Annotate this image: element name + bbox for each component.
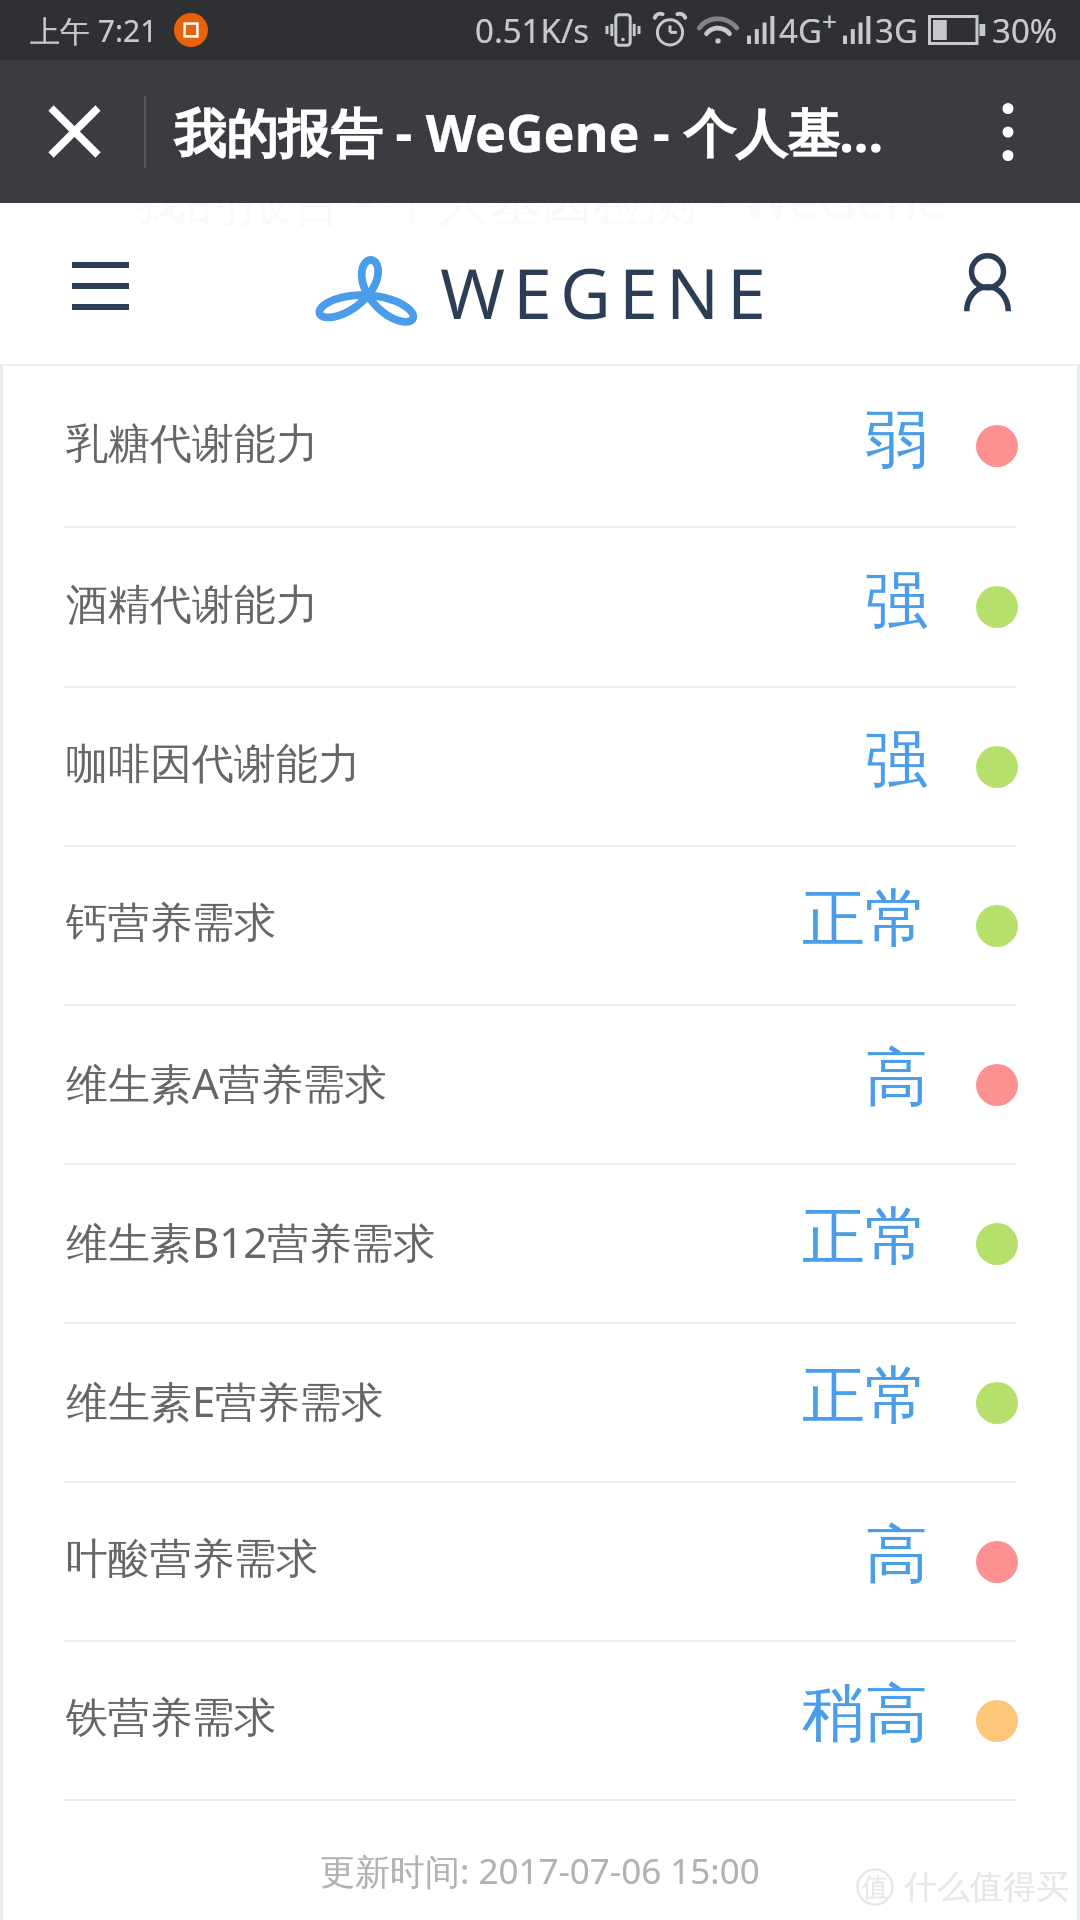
- button[interactable]: 酒精代谢能力: [3, 528, 1077, 686]
- staticText: 酒精代谢能力: [66, 579, 318, 632]
- staticText: 正常: [802, 1356, 928, 1435]
- staticText: 铁营养需求: [66, 1692, 276, 1745]
- staticText: 强: [865, 561, 928, 640]
- staticText: 咖啡因代谢能力: [66, 738, 360, 791]
- staticText: 30%: [992, 8, 1058, 53]
- staticText: 3G: [875, 8, 918, 53]
- staticText: 4G: [779, 8, 822, 53]
- staticText: 钙营养需求: [66, 897, 276, 950]
- button[interactable]: 咖啡因代谢能力: [3, 688, 1077, 845]
- staticText: 高: [865, 1515, 928, 1594]
- staticText: 0.51K/s: [475, 8, 589, 53]
- staticText: 乳糖代谢能力: [66, 418, 318, 471]
- button[interactable]: 钙营养需求: [3, 847, 1077, 1004]
- button[interactable]: Account: [952, 246, 1028, 322]
- staticText: 正常: [802, 1197, 928, 1276]
- staticText: 什么值得买: [904, 1866, 1069, 1908]
- staticText: 强: [865, 720, 928, 799]
- staticText: 弱: [865, 400, 928, 479]
- staticText: 高: [865, 1038, 928, 1117]
- staticText: WEGENE: [440, 244, 775, 339]
- button[interactable]: Menu: [62, 246, 138, 322]
- staticText: 维生素A营养需求: [66, 1054, 387, 1111]
- staticText: 值: [862, 1871, 888, 1904]
- staticText: 维生素E营养需求: [66, 1372, 384, 1429]
- staticText: 正常: [802, 879, 928, 958]
- staticText: 稍高: [802, 1674, 928, 1753]
- button[interactable]: 维生素B12营养需求: [3, 1165, 1077, 1322]
- button[interactable]: More options: [936, 60, 1080, 203]
- button[interactable]: 乳糖代谢能力: [3, 366, 1077, 526]
- staticText: +: [822, 3, 837, 38]
- button[interactable]: 铁营养需求: [3, 1642, 1077, 1799]
- staticText: 上午 7:21: [30, 10, 158, 51]
- staticText: 更新时间: 2017-07-06 15:00: [320, 1847, 760, 1895]
- staticText: 维生素B12营养需求: [66, 1213, 436, 1270]
- staticText: 我的报告 - WeGene - 个人基...: [174, 96, 884, 167]
- button[interactable]: 叶酸营养需求: [3, 1483, 1077, 1640]
- button[interactable]: Close: [0, 60, 144, 203]
- button[interactable]: 维生素E营养需求: [3, 1324, 1077, 1481]
- staticText: 叶酸营养需求: [66, 1533, 318, 1586]
- button[interactable]: 维生素A营养需求: [3, 1006, 1077, 1163]
